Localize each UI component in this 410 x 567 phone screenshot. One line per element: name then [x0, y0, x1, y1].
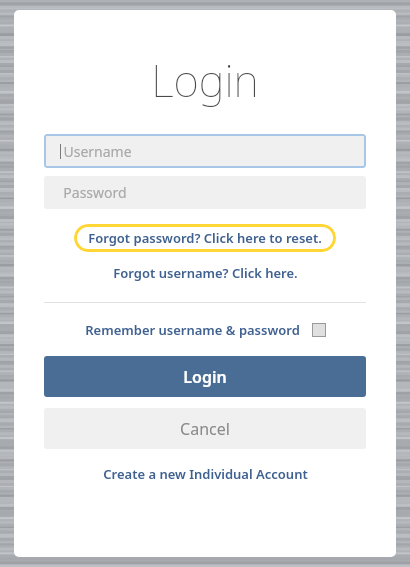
- button[interactable]: Login: [44, 356, 366, 397]
- staticText: Forgot username? Click here.: [113, 264, 298, 282]
- button[interactable]: Forgot password? Click here to reset.: [74, 224, 336, 252]
- staticText: Password: [63, 183, 127, 202]
- staticText: Login: [183, 366, 227, 388]
- button[interactable]: Remember username & password: [44, 321, 366, 339]
- staticText: Cancel: [180, 418, 230, 440]
- other: Remember username and password: [312, 323, 326, 337]
- staticText: Remember username & password: [85, 321, 300, 339]
- staticText: Username: [63, 142, 132, 161]
- staticText: Login: [151, 50, 259, 110]
- staticText: Create a new Individual Account: [103, 465, 308, 483]
- button[interactable]: Forgot username? Click here.: [107, 261, 304, 285]
- button[interactable]: Cancel: [44, 408, 366, 449]
- button[interactable]: Password: [44, 176, 366, 209]
- button[interactable]: Username: [44, 134, 366, 168]
- staticText: Forgot password? Click here to reset.: [88, 229, 322, 247]
- button[interactable]: Create a new Individual Account: [97, 461, 314, 487]
